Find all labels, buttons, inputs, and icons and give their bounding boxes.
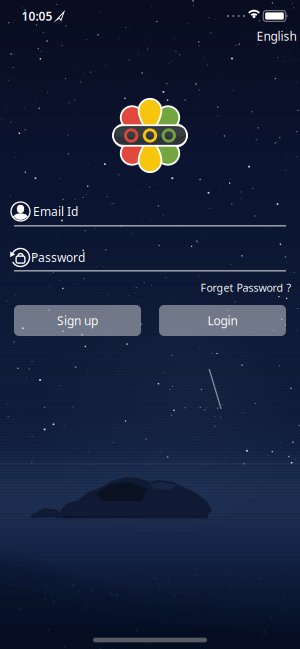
staticText: Forget Password ? (200, 280, 291, 295)
button[interactable]: Email Id (14, 195, 286, 229)
staticText: Password (31, 249, 85, 265)
staticText: Email Id (33, 203, 78, 219)
staticText: Login (207, 312, 237, 328)
staticText: Sign up (57, 312, 98, 328)
button[interactable]: Password (14, 241, 286, 275)
staticText: English (256, 28, 296, 44)
button[interactable]: English (256, 28, 296, 44)
button[interactable]: Forget Password ? (200, 280, 291, 295)
staticText: 10:05 (21, 8, 52, 24)
button[interactable]: Login (159, 305, 286, 336)
button[interactable]: Sign up (14, 305, 141, 336)
